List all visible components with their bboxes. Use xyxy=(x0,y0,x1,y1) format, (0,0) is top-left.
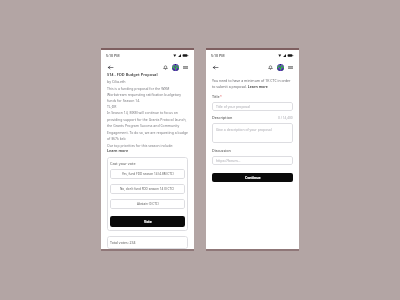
staticText: Engagement. To do so, we are requesting … xyxy=(107,130,188,141)
button[interactable]: Menu xyxy=(181,63,189,71)
staticText: Total votes: 234 xyxy=(110,240,136,245)
button[interactable]: Profile xyxy=(171,63,179,71)
button[interactable]: Notifications xyxy=(161,63,169,71)
staticText: Yes, fund FDD season 14 (4.8M CTC) xyxy=(122,172,174,176)
staticText: providing support for the Grants Protoco… xyxy=(107,117,187,128)
staticText: 5:10 PM xyxy=(211,53,225,58)
staticText: No, don't fund FDD season 14 (0 CTC) xyxy=(120,187,175,191)
button[interactable]: Back xyxy=(106,63,114,71)
staticText: This is a funding proposal for the WXM W… xyxy=(107,86,182,115)
button[interactable]: Yes, fund FDD season 14 (4.8M CTC) xyxy=(110,169,185,179)
staticText: Learn more xyxy=(107,148,129,153)
button[interactable]: Give a description of your proposal xyxy=(212,123,293,143)
button[interactable]: No, don't fund FDD season 14 (0 CTC) xyxy=(110,184,185,194)
button[interactable]: Title of your proposal xyxy=(212,102,293,111)
staticText: * xyxy=(220,94,222,99)
staticText: Title xyxy=(212,94,220,99)
button[interactable]: Abstain (0 CTC) xyxy=(110,199,185,209)
staticText: Title of your proposal xyxy=(216,104,250,109)
button[interactable]: Continue xyxy=(212,173,293,182)
button[interactable]: Notifications xyxy=(266,63,274,71)
staticText: Our top priorities for this season inclu… xyxy=(107,143,174,148)
staticText: 0 / 14,400 xyxy=(278,116,293,120)
staticText: 5:10 PM xyxy=(106,53,120,58)
staticText: Discussion xyxy=(212,148,231,153)
button[interactable]: Profile xyxy=(276,63,284,71)
button[interactable]: Back xyxy=(211,63,219,71)
staticText: Give a description of your proposal xyxy=(216,127,272,132)
staticText: Vote xyxy=(144,219,152,224)
staticText: Description xyxy=(212,115,233,120)
button[interactable]: Vote xyxy=(110,216,185,227)
staticText: Continue xyxy=(245,175,261,180)
staticText: Cast your vote xyxy=(110,161,136,166)
staticText: Abstain (0 CTC) xyxy=(137,202,159,206)
staticText: by Cilia.eth xyxy=(107,79,126,84)
staticText: S14 - FDD Budget Proposal xyxy=(107,72,158,77)
staticText: https://forum... xyxy=(216,158,241,163)
button[interactable]: Menu xyxy=(286,63,294,71)
staticText: You need to have a minimum of 1K CTC in … xyxy=(212,78,293,89)
button[interactable]: https://forum... xyxy=(212,156,293,165)
